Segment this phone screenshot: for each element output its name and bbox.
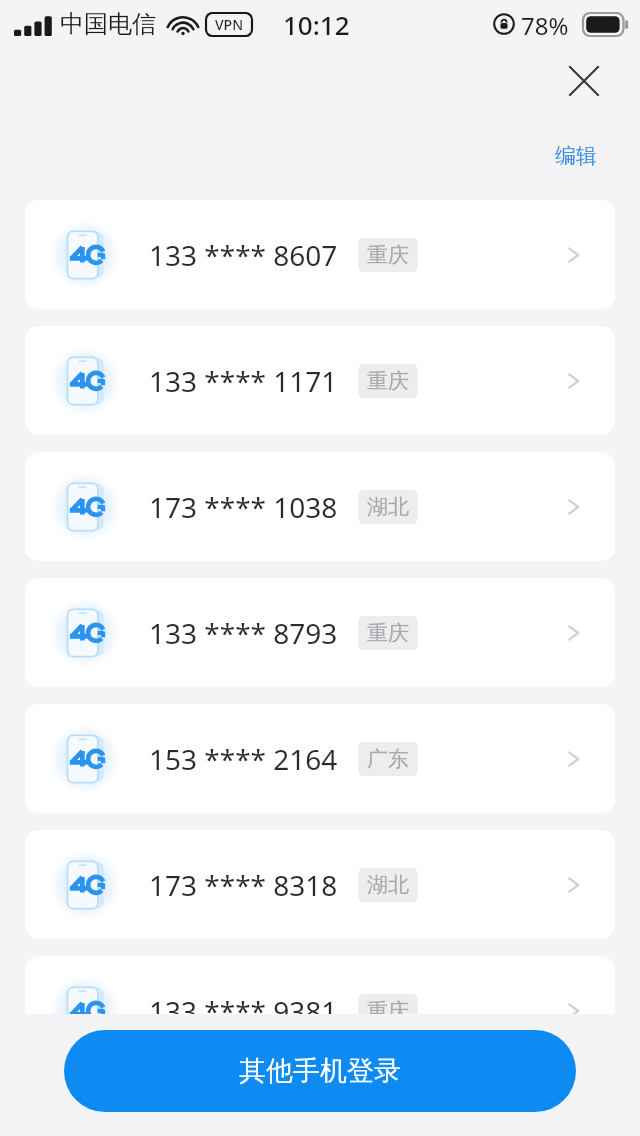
staticText: 133 **** 8793 bbox=[149, 614, 338, 652]
staticText: 湖北 bbox=[367, 872, 409, 898]
staticText: 其他手机登录 bbox=[239, 1054, 401, 1088]
staticText: 78% bbox=[521, 9, 569, 42]
staticText: 编辑 bbox=[555, 143, 597, 169]
staticText: 10:12 bbox=[283, 7, 350, 42]
staticText: 173 **** 8318 bbox=[149, 866, 338, 904]
staticText: 重庆 bbox=[367, 620, 409, 646]
button[interactable]: 153 **** 2164 bbox=[25, 704, 615, 813]
staticText: 中国电信 bbox=[60, 9, 156, 39]
staticText: 重庆 bbox=[367, 998, 409, 1024]
staticText: 153 **** 2164 bbox=[149, 740, 338, 778]
staticText: 广东 bbox=[367, 746, 409, 772]
staticText: 133 **** 8607 bbox=[149, 236, 338, 274]
button[interactable]: 其他手机登录 bbox=[64, 1030, 576, 1112]
staticText: 湖北 bbox=[367, 494, 409, 520]
staticText: VPN bbox=[215, 15, 244, 34]
button[interactable]: 133 **** 9381 bbox=[25, 956, 615, 1065]
button[interactable]: 133 **** 1171 bbox=[25, 326, 615, 435]
button[interactable]: 133 **** 8607 bbox=[25, 200, 615, 309]
staticText: 173 **** 1038 bbox=[149, 488, 338, 526]
staticText: 133 **** 9381 bbox=[149, 992, 338, 1030]
button[interactable]: 133 **** 8793 bbox=[25, 578, 615, 687]
button[interactable]: 173 **** 8318 bbox=[25, 830, 615, 939]
staticText: 重庆 bbox=[367, 368, 409, 394]
button[interactable]: 173 **** 1038 bbox=[25, 452, 615, 561]
button[interactable]: 编辑 bbox=[536, 134, 616, 178]
staticText: 重庆 bbox=[367, 242, 409, 268]
button[interactable]: Close bbox=[552, 49, 616, 113]
staticText: 133 **** 1171 bbox=[149, 362, 338, 400]
